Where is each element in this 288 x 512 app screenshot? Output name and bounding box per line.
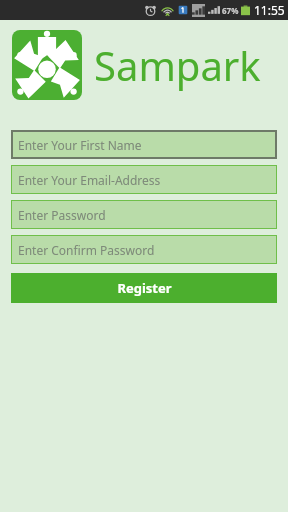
other: Sampark logo: [12, 30, 82, 100]
staticText: Sampark: [94, 38, 261, 92]
button[interactable]: Register: [11, 273, 277, 303]
button[interactable]: Enter Password: [11, 200, 277, 229]
staticText: Enter Your Email-Address: [18, 172, 161, 188]
staticText: Enter Password: [18, 207, 106, 223]
staticText: Enter Confirm Password: [18, 242, 155, 258]
staticText: Enter Your First Name: [18, 137, 142, 153]
button[interactable]: Enter Your Email-Address: [11, 165, 277, 194]
button[interactable]: Enter Your First Name: [11, 130, 277, 159]
staticText: 67%: [222, 5, 239, 16]
staticText: Register: [117, 279, 172, 297]
staticText: 11:55: [254, 2, 285, 18]
button[interactable]: Enter Confirm Password: [11, 235, 277, 264]
